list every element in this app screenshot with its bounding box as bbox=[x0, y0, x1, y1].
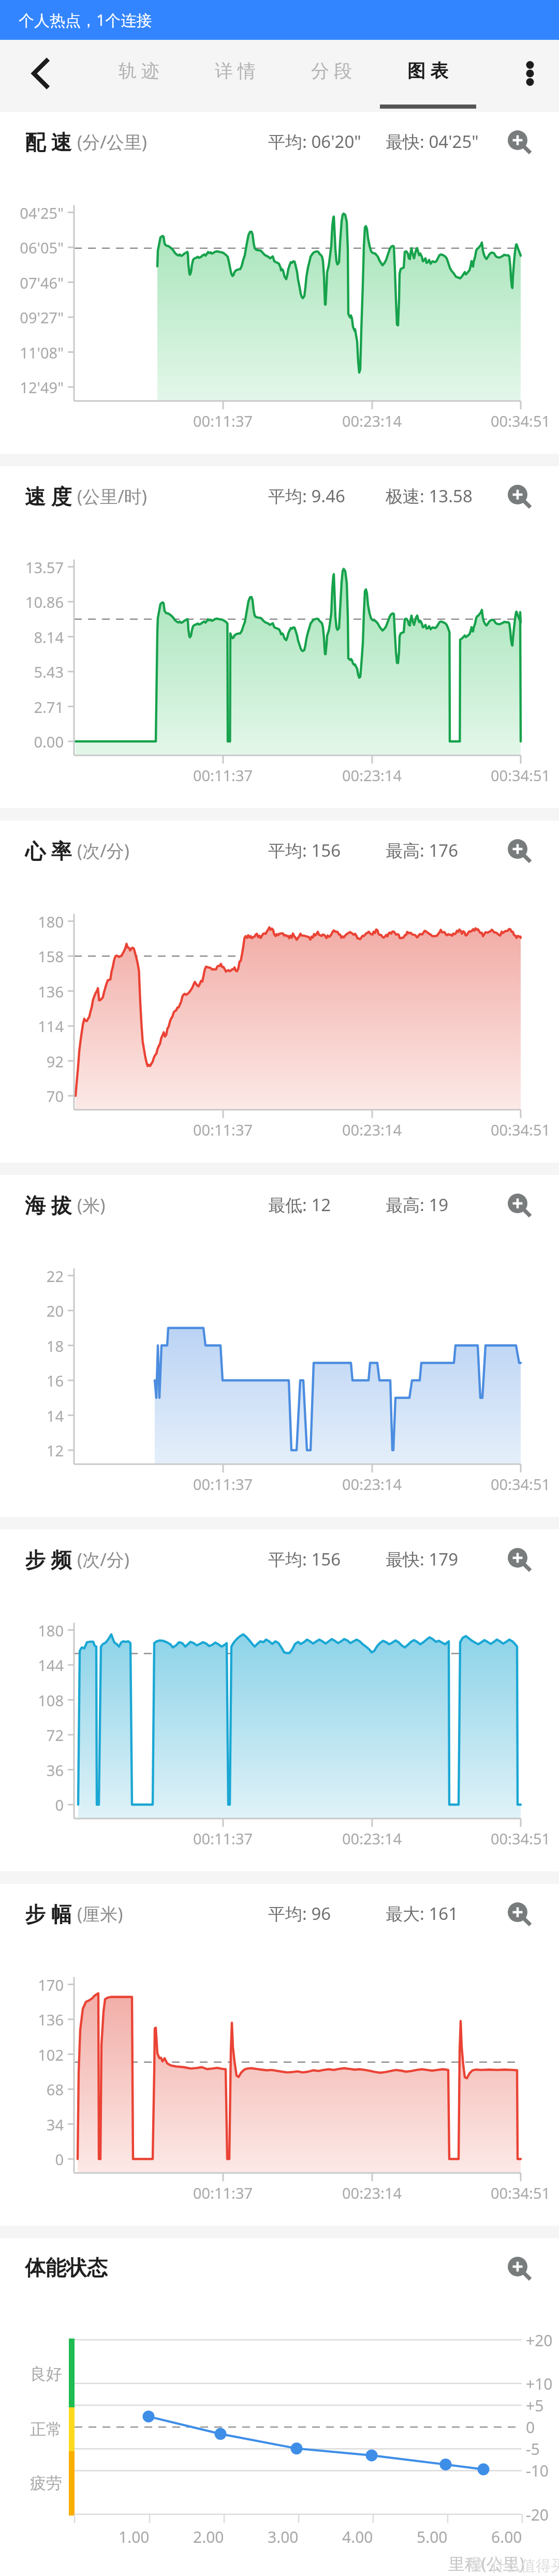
button[interactable]: 轨 迹 bbox=[91, 40, 187, 112]
staticText: 00:23:14 bbox=[342, 1120, 402, 1140]
staticText: +5 bbox=[526, 2395, 544, 2416]
staticText: 00:23:14 bbox=[342, 1828, 402, 1849]
staticText: -10 bbox=[526, 2460, 549, 2481]
staticText: 00:11:37 bbox=[193, 1828, 253, 1849]
button[interactable]: 详 情 bbox=[187, 40, 284, 112]
staticText: 70 bbox=[46, 1086, 64, 1106]
staticText: 158 bbox=[38, 946, 64, 966]
staticText: 5.00 bbox=[417, 2526, 448, 2548]
staticText: 20 bbox=[46, 1301, 64, 1321]
staticText: 00:23:14 bbox=[342, 765, 402, 785]
staticText: 什么值得买 bbox=[491, 2556, 559, 2575]
staticText: 6.00 bbox=[491, 2526, 522, 2548]
staticText: 12 bbox=[46, 1440, 64, 1461]
staticText: 配 速 bbox=[25, 127, 72, 156]
button[interactable]: Zoom in chart bbox=[503, 1543, 534, 1574]
staticText: 144 bbox=[38, 1655, 64, 1675]
staticText: 00:11:37 bbox=[193, 1120, 253, 1140]
staticText: 72 bbox=[46, 1725, 64, 1745]
staticText: (米) bbox=[77, 1193, 106, 1217]
staticText: 10.86 bbox=[25, 592, 64, 612]
button[interactable]: More options bbox=[501, 40, 559, 112]
staticText: 心 率 bbox=[25, 836, 72, 865]
staticText: (次/分) bbox=[77, 839, 130, 862]
button[interactable]: Zoom in chart bbox=[503, 1898, 534, 1929]
staticText: 图 表 bbox=[407, 58, 449, 83]
staticText: 0.00 bbox=[34, 732, 64, 752]
staticText: 13.57 bbox=[25, 557, 64, 577]
staticText: 07'46" bbox=[20, 273, 64, 293]
staticText: 个人热点，1个连接 bbox=[19, 9, 152, 31]
staticText: 速 度 bbox=[25, 482, 72, 510]
staticText: 平均: 156 bbox=[268, 839, 341, 862]
staticText: 68 bbox=[46, 2079, 64, 2099]
staticText: 34 bbox=[46, 2115, 64, 2135]
staticText: 00:23:14 bbox=[342, 1474, 402, 1494]
staticText: 180 bbox=[38, 912, 64, 932]
staticText: +20 bbox=[526, 2330, 553, 2351]
button[interactable]: 图 表 bbox=[380, 40, 476, 112]
staticText: 114 bbox=[38, 1016, 64, 1036]
staticText: 00:11:37 bbox=[193, 2183, 253, 2203]
staticText: 09'27" bbox=[20, 307, 64, 327]
staticText: 136 bbox=[38, 2009, 64, 2030]
button[interactable]: Zoom in chart bbox=[503, 835, 534, 866]
staticText: (次/分) bbox=[77, 1547, 130, 1571]
staticText: 00:23:14 bbox=[342, 2183, 402, 2203]
staticText: 3.00 bbox=[268, 2526, 299, 2548]
staticText: 36 bbox=[46, 1760, 64, 1780]
staticText: -5 bbox=[526, 2438, 540, 2460]
staticText: 最低: 12 bbox=[268, 1193, 331, 1216]
staticText: 16 bbox=[46, 1371, 64, 1391]
staticText: 体能状态 bbox=[25, 2255, 108, 2281]
staticText: 分 段 bbox=[311, 58, 352, 83]
staticText: 108 bbox=[38, 1690, 64, 1710]
staticText: 00:34:51 bbox=[491, 411, 551, 431]
staticText: 最高: 176 bbox=[386, 839, 459, 862]
staticText: 最快: 179 bbox=[386, 1547, 459, 1571]
button[interactable]: Zoom in chart bbox=[503, 480, 534, 511]
staticText: 180 bbox=[38, 1620, 64, 1641]
staticText: 102 bbox=[38, 2045, 64, 2065]
staticText: 0 bbox=[55, 2149, 64, 2169]
staticText: 00:11:37 bbox=[193, 765, 253, 785]
staticText: 海 拔 bbox=[25, 1190, 72, 1219]
staticText: 平均: 9.46 bbox=[268, 484, 345, 508]
staticText: 170 bbox=[38, 1975, 64, 1995]
staticText: 22 bbox=[46, 1266, 64, 1286]
staticText: 00:34:51 bbox=[491, 1474, 551, 1494]
staticText: 1.00 bbox=[119, 2526, 150, 2548]
staticText: 00:11:37 bbox=[193, 411, 253, 431]
staticText: (公里/时) bbox=[77, 484, 148, 508]
staticText: 极速: 13.58 bbox=[386, 484, 473, 508]
staticText: 平均: 156 bbox=[268, 1547, 341, 1571]
staticText: +10 bbox=[526, 2373, 553, 2394]
staticText: 5.43 bbox=[34, 662, 64, 682]
staticText: 最大: 161 bbox=[386, 1902, 459, 1925]
staticText: 轨 迹 bbox=[119, 58, 160, 83]
staticText: 136 bbox=[38, 981, 64, 1002]
staticText: 00:34:51 bbox=[491, 1120, 551, 1140]
button[interactable]: Zoom in chart bbox=[503, 126, 534, 157]
staticText: 00:23:14 bbox=[342, 411, 402, 431]
staticText: 92 bbox=[46, 1051, 64, 1071]
button[interactable]: Back bbox=[0, 40, 83, 112]
button[interactable]: Zoom in chart bbox=[503, 2252, 534, 2283]
staticText: 良好 bbox=[30, 2364, 62, 2384]
staticText: 00:34:51 bbox=[491, 2183, 551, 2203]
staticText: 06'05" bbox=[20, 237, 64, 258]
staticText: 步 幅 bbox=[25, 1899, 72, 1928]
staticText: 04'25" bbox=[20, 203, 64, 223]
staticText: 0 bbox=[55, 1795, 64, 1815]
button[interactable]: Zoom in chart bbox=[503, 1189, 534, 1220]
staticText: 最快: 04'25" bbox=[386, 130, 479, 153]
staticText: 里程(公里) bbox=[448, 2552, 525, 2575]
staticText: 值 bbox=[471, 2557, 481, 2570]
staticText: (厘米) bbox=[77, 1902, 123, 1926]
staticText: 8.14 bbox=[34, 627, 64, 647]
button[interactable]: 分 段 bbox=[284, 40, 380, 112]
staticText: 最高: 19 bbox=[386, 1193, 449, 1216]
staticText: 平均: 96 bbox=[268, 1902, 331, 1925]
staticText: (分/公里) bbox=[77, 130, 148, 154]
staticText: 11'08" bbox=[20, 343, 64, 363]
